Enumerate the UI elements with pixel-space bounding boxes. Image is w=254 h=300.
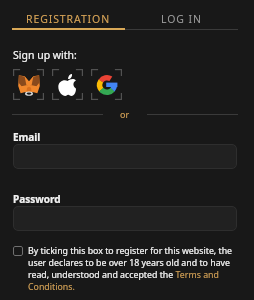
- staticText: LOG IN: [161, 12, 202, 26]
- button[interactable]: LOG IN: [125, 12, 238, 30]
- staticText: Email: [13, 130, 41, 144]
- button[interactable]: Sign up with Google: [91, 69, 122, 100]
- staticText: By ticking this box to register for this…: [28, 245, 238, 293]
- button[interactable]: [13, 144, 237, 169]
- button[interactable]: Sign up with MetaMask: [13, 69, 44, 100]
- button[interactable]: REGISTRATION: [12, 12, 125, 30]
- staticText: REGISTRATION: [26, 12, 111, 26]
- button[interactable]: Accept terms and conditions: [13, 246, 23, 256]
- staticText: or: [120, 108, 130, 120]
- staticText: Sign up with:: [13, 48, 77, 62]
- button[interactable]: [13, 206, 237, 231]
- button[interactable]: Sign up with Apple: [52, 69, 83, 100]
- staticText: Password: [13, 192, 61, 206]
